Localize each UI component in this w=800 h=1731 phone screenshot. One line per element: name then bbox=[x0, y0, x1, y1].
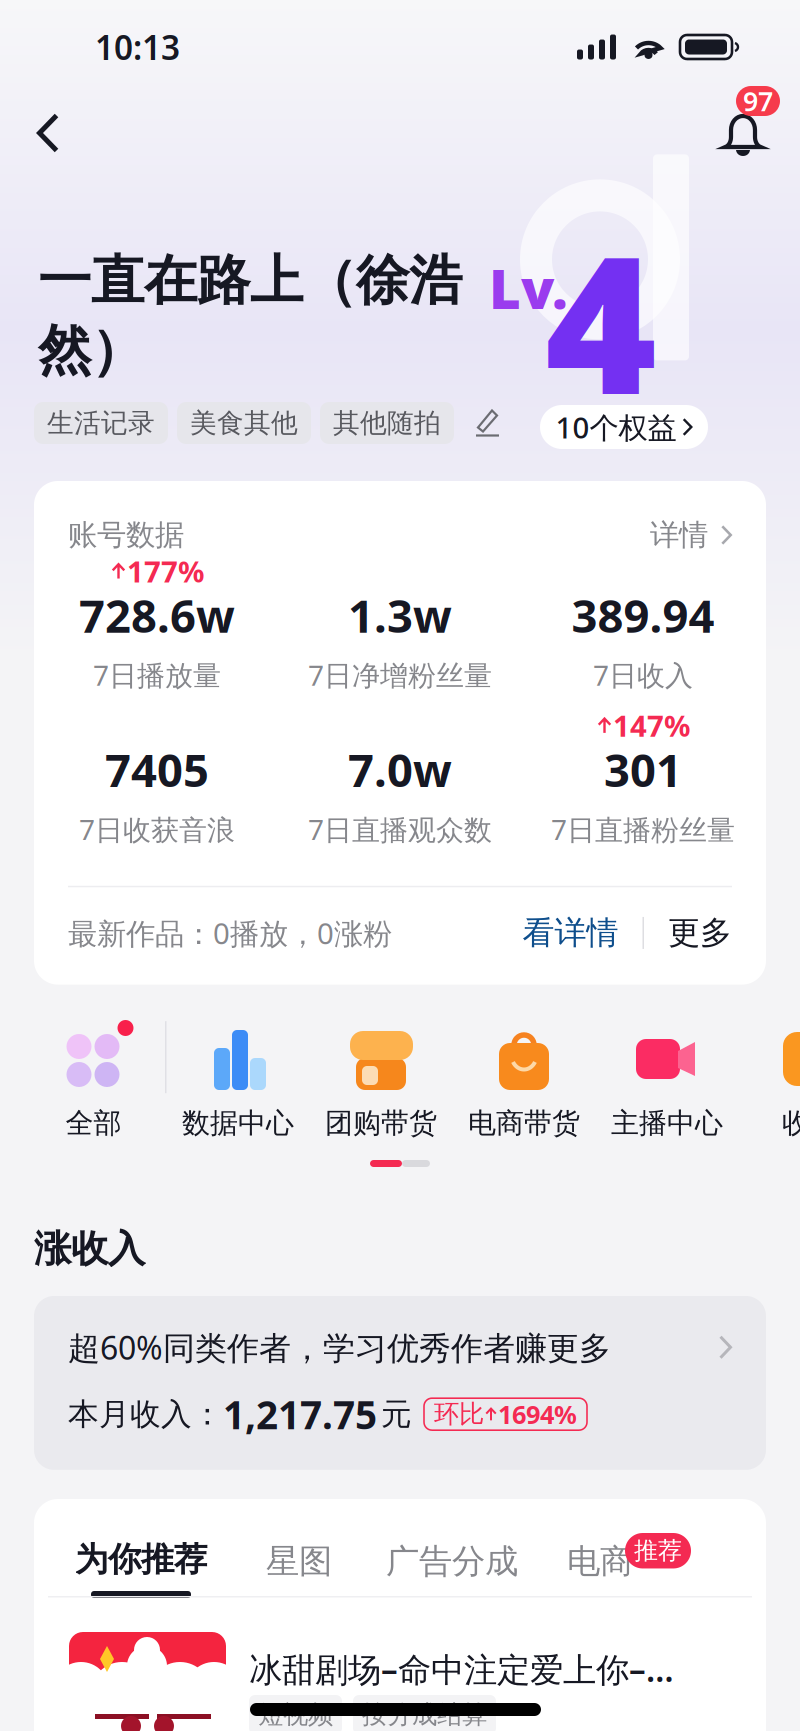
staticText: 数据中心 bbox=[182, 1106, 294, 1140]
staticText: 301 bbox=[604, 739, 682, 800]
button[interactable]: 主播中心 bbox=[595, 1016, 738, 1140]
staticText: 短视频 bbox=[258, 1699, 333, 1730]
staticText: 97 bbox=[743, 83, 773, 119]
button[interactable]: 更多 bbox=[668, 913, 732, 953]
button[interactable]: 10个权益 bbox=[540, 405, 708, 449]
button[interactable]: 超60%同类作者，学习优秀作者赚更多 bbox=[34, 1296, 766, 1470]
staticText: 然） bbox=[38, 318, 144, 383]
staticText: 看详情 bbox=[522, 913, 618, 953]
button[interactable]: 星图 bbox=[266, 1541, 332, 1582]
staticText: 全部 bbox=[65, 1106, 121, 1140]
staticText: 生活记录 bbox=[47, 407, 155, 439]
staticText: 7.0w bbox=[348, 739, 452, 800]
button[interactable]: Back bbox=[37, 113, 59, 153]
staticText: 团购带货 bbox=[325, 1106, 437, 1140]
staticText: 为你推荐 bbox=[75, 1539, 207, 1580]
button[interactable]: 电商带货 bbox=[452, 1016, 595, 1140]
button[interactable]: 团购带货 bbox=[309, 1016, 452, 1140]
button[interactable]: 为你推荐 bbox=[75, 1539, 207, 1580]
button[interactable]: 广告分成 bbox=[386, 1541, 518, 1582]
staticText: 环比 bbox=[434, 1399, 484, 1430]
staticText: 7日收入 bbox=[593, 656, 693, 693]
staticText: 超60%同类作者，学习优秀作者赚更多 bbox=[68, 1326, 611, 1368]
staticText: 推荐 bbox=[634, 1536, 682, 1565]
button[interactable]: 看详情 bbox=[522, 913, 618, 953]
staticText: 主播中心 bbox=[611, 1106, 723, 1140]
staticText: 7日直播粉丝量 bbox=[551, 811, 735, 848]
button[interactable]: 数据中心 bbox=[166, 1016, 309, 1140]
staticText: 177% bbox=[127, 552, 204, 591]
staticText: 电商带货 bbox=[468, 1106, 580, 1140]
staticText: 冰甜剧场–命中注定爱上你–… bbox=[249, 1647, 674, 1691]
staticText: 147% bbox=[613, 706, 690, 745]
staticText: 一直在路上（徐浩 bbox=[38, 248, 462, 313]
staticText: 7日净增粉丝量 bbox=[308, 656, 492, 693]
staticText: 7日直播观众数 bbox=[308, 811, 492, 848]
staticText: 728.6w bbox=[79, 585, 235, 645]
button[interactable]: Edit tags bbox=[475, 407, 501, 438]
staticText: 涨收入 bbox=[34, 1226, 145, 1272]
staticText: 更多 bbox=[668, 913, 732, 953]
staticText: 美食其他 bbox=[190, 407, 298, 439]
button[interactable]: 全部 bbox=[22, 1016, 165, 1140]
staticText: 本月收入： bbox=[68, 1395, 223, 1433]
staticText: 详情 bbox=[650, 517, 708, 553]
button[interactable]: Notifications bbox=[723, 112, 763, 158]
staticText: 1694% bbox=[498, 1397, 577, 1431]
staticText: 其他随拍 bbox=[333, 407, 441, 439]
button[interactable]: 电商 bbox=[567, 1541, 633, 1582]
staticText: 广告分成 bbox=[386, 1541, 518, 1582]
button[interactable]: 收入 bbox=[738, 1016, 800, 1140]
button[interactable]: 生活记录 bbox=[34, 402, 168, 444]
staticText: 1,217.75 bbox=[223, 1388, 377, 1440]
button[interactable]: 其他随拍 bbox=[320, 402, 454, 444]
staticText: 10个权益 bbox=[555, 407, 676, 446]
staticText: 7日播放量 bbox=[93, 656, 221, 693]
staticText: 电商 bbox=[567, 1541, 633, 1582]
staticText: 收入 bbox=[782, 1106, 800, 1140]
staticText: 4 bbox=[545, 193, 657, 447]
staticText: 1.3w bbox=[348, 585, 452, 645]
button[interactable]: 美食其他 bbox=[177, 402, 311, 444]
staticText: 389.94 bbox=[571, 585, 714, 645]
staticText: 账号数据 bbox=[68, 517, 184, 553]
staticText: Lv. bbox=[489, 251, 568, 324]
staticText: 最新作品：0播放，0涨粉 bbox=[68, 913, 392, 952]
staticText: 星图 bbox=[266, 1541, 332, 1582]
staticText: 10:13 bbox=[95, 25, 180, 69]
button[interactable]: 账号数据 bbox=[68, 481, 732, 553]
staticText: 元 bbox=[381, 1395, 412, 1433]
staticText: 7日收获音浪 bbox=[79, 811, 235, 848]
staticText: 7405 bbox=[105, 739, 209, 800]
staticText: 按分成结算 bbox=[362, 1699, 487, 1730]
